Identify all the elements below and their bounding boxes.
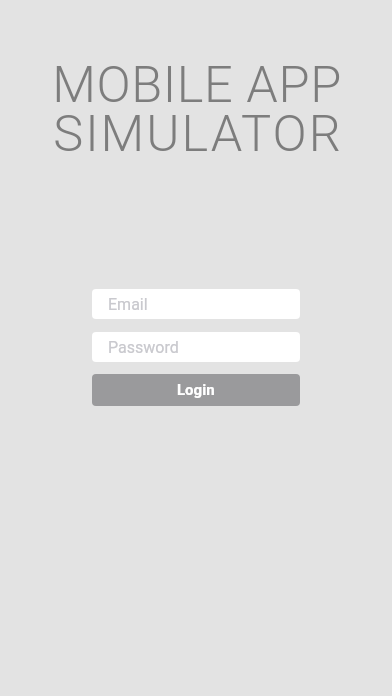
staticText: SIMULATOR	[53, 104, 343, 163]
button[interactable]: Password	[92, 332, 300, 362]
button[interactable]: Login	[92, 374, 300, 406]
button[interactable]: Email	[92, 289, 300, 319]
staticText: Login	[177, 381, 215, 399]
staticText: Email	[108, 295, 148, 314]
staticText: MOBILE APP	[52, 55, 342, 114]
staticText: Password	[108, 338, 179, 357]
